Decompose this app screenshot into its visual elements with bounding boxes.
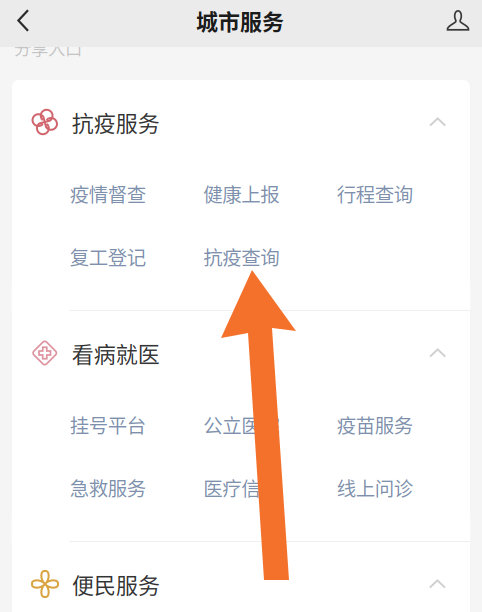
button[interactable]: 看病就医 [12,311,470,395]
staticText: 抗疫服务 [72,106,160,138]
button[interactable]: 挂号平台 [70,395,203,454]
staticText: 看病就医 [72,337,160,369]
staticText: 公立医院 [203,410,279,439]
staticText: 分享入口 [14,35,82,60]
button[interactable]: 行程查询 [337,164,470,223]
button[interactable]: 便民服务 [12,542,470,612]
staticText: 挂号平台 [70,410,146,439]
button[interactable]: Back [0,0,46,47]
button[interactable]: 医疗信息 [203,458,337,517]
staticText: 线上问诊 [337,473,413,502]
staticText: 疫情督查 [70,179,146,208]
button[interactable]: 抗疫服务 [12,80,470,164]
button[interactable]: 抗疫查询 [203,227,337,286]
staticText: 疫苗服务 [337,410,413,439]
staticText: 行程查询 [337,179,413,208]
staticText: 急救服务 [70,473,146,502]
button[interactable]: 线上问诊 [337,458,470,517]
button[interactable]: 复工登记 [70,227,203,286]
staticText: 城市服务 [196,5,284,36]
staticText: 复工登记 [70,242,146,271]
staticText: 医疗信息 [203,473,279,502]
staticText: 便民服务 [72,568,160,600]
staticText: 抗疫查询 [203,242,279,271]
staticText: 健康上报 [203,179,279,208]
button[interactable]: 急救服务 [70,458,203,517]
button[interactable]: 疫情督查 [70,164,203,223]
button[interactable]: 疫苗服务 [337,395,470,454]
button[interactable]: Profile [434,0,482,47]
button[interactable]: 公立医院 [203,395,337,454]
button[interactable]: 健康上报 [203,164,337,223]
